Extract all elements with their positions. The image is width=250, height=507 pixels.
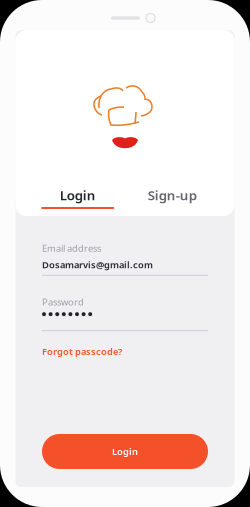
button[interactable]: Login (30, 186, 125, 209)
staticText: Sign-up (148, 186, 197, 204)
button[interactable]: Forgot passcode? (42, 345, 122, 358)
button[interactable]: Login (42, 434, 208, 469)
staticText: Login (112, 445, 138, 458)
staticText: Password (42, 296, 84, 308)
staticText: Forgot passcode? (42, 345, 122, 358)
staticText: Email address (42, 242, 101, 254)
staticText: Dosamarvis@gmail.com (42, 258, 153, 271)
button[interactable]: Sign-up (125, 186, 219, 209)
staticText: Login (60, 186, 96, 204)
